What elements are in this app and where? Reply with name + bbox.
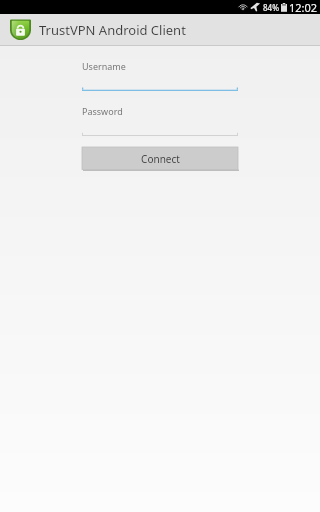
staticText: 84% [263, 2, 279, 13]
staticText: Password [82, 105, 123, 117]
staticText: Connect [141, 152, 180, 166]
staticText: 12:02 [289, 0, 318, 14]
staticText: Username [82, 60, 126, 72]
button[interactable]: Password [82, 105, 238, 136]
staticText: TrustVPN Android Client [39, 21, 186, 39]
button[interactable]: Connect [82, 147, 238, 171]
button[interactable]: Username [82, 60, 238, 91]
